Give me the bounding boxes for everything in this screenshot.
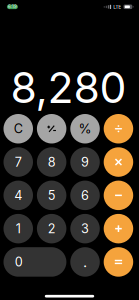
button[interactable]: 3 [70, 214, 100, 243]
button[interactable]: 4 [3, 181, 33, 210]
staticText: 3 [81, 221, 89, 236]
button[interactable]: 9 [70, 147, 100, 177]
button[interactable]: 5 [37, 181, 66, 210]
button[interactable]: 0 [3, 247, 66, 277]
button[interactable]: 6 [70, 181, 100, 210]
button[interactable]: Plus Minus [37, 114, 66, 143]
staticText: 4 [14, 188, 22, 203]
staticText: 1 [16, 221, 21, 236]
button[interactable]: Equals [104, 247, 133, 277]
staticText: 7 [15, 154, 22, 170]
staticText: 6 [81, 188, 89, 203]
button[interactable]: 7 [3, 147, 33, 177]
staticText: C [14, 121, 23, 136]
staticText: % [78, 121, 91, 137]
staticText: 5 [48, 188, 56, 203]
staticText: 8,280 [10, 62, 126, 113]
staticText: 6:19 [8, 4, 17, 9]
button[interactable]: 1 [3, 214, 33, 243]
button[interactable]: Minus [104, 181, 133, 210]
staticText: LTE [113, 4, 121, 10]
staticText: 2 [48, 221, 56, 236]
button[interactable]: Plus [104, 214, 133, 243]
button[interactable]: 8 [37, 147, 66, 177]
staticText: 0 [15, 254, 23, 270]
button[interactable]: Divide [104, 114, 133, 143]
button[interactable]: C [3, 114, 33, 143]
button[interactable]: 2 [37, 214, 66, 243]
staticText: 8 [48, 154, 56, 170]
button[interactable]: . [70, 247, 100, 277]
button[interactable]: % [70, 114, 100, 143]
staticText: . [83, 253, 87, 271]
staticText: 9 [81, 154, 89, 170]
button[interactable]: Multiply [104, 147, 133, 177]
